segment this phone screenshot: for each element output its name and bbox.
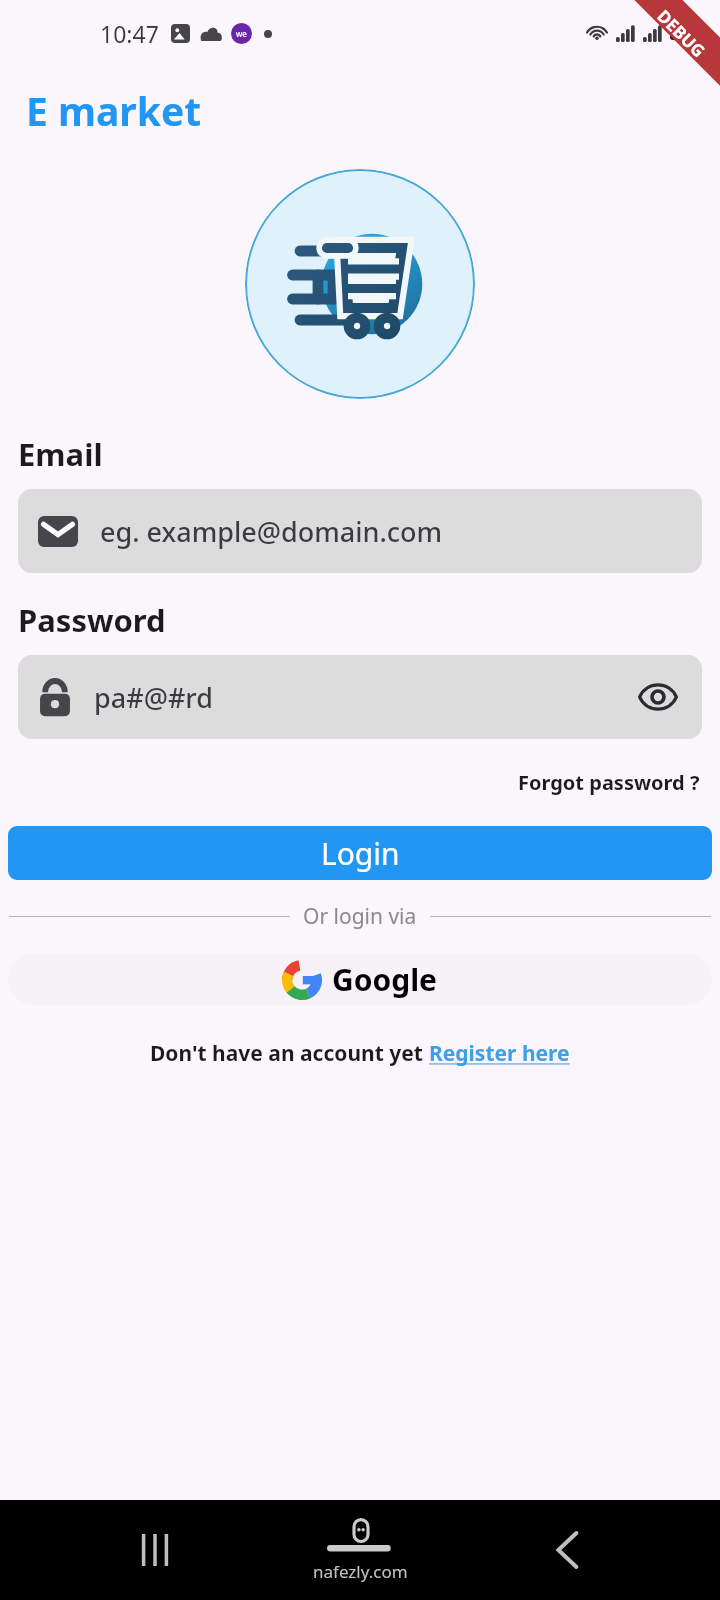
staticText: Password: [18, 599, 166, 641]
button[interactable]: Show password: [634, 680, 682, 714]
staticText: eg. example@domain.com: [100, 513, 443, 550]
button[interactable]: Recent apps: [130, 1524, 180, 1576]
button[interactable]: pa#@#rd: [18, 655, 702, 739]
staticText: Email: [18, 433, 103, 475]
button[interactable]: eg. example@domain.com: [18, 489, 702, 573]
staticText: Login: [321, 833, 400, 874]
staticText: Or login via: [303, 902, 417, 931]
staticText: E market: [26, 84, 202, 137]
button[interactable]: Login: [8, 826, 712, 880]
staticText: 10:47: [100, 18, 159, 49]
button[interactable]: Google: [8, 953, 712, 1005]
staticText: nafezly.com: [313, 1560, 408, 1583]
staticText: Don't have an account yet: [150, 1039, 429, 1068]
staticText: we: [236, 28, 247, 39]
button[interactable]: Register here: [429, 1039, 570, 1068]
staticText: pa#@#rd: [94, 679, 213, 716]
staticText: DEBUG: [652, 4, 710, 62]
button[interactable]: Forgot password ?: [518, 765, 720, 800]
button[interactable]: Back: [546, 1523, 590, 1577]
staticText: Google: [332, 959, 438, 1000]
